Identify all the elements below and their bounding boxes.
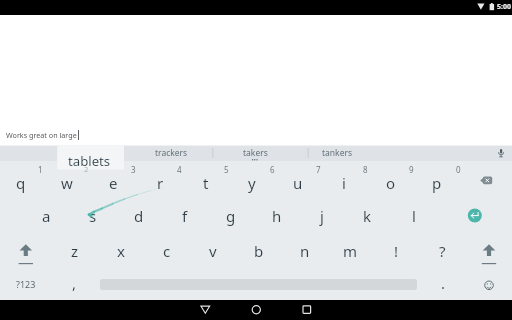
- staticText: y: [248, 173, 256, 193]
- button[interactable]: q: [0, 170, 44, 196]
- button[interactable]: c: [144, 238, 189, 264]
- staticText: u: [293, 173, 303, 193]
- staticText: 4: [177, 164, 182, 175]
- staticText: a: [42, 206, 51, 226]
- staticText: q: [16, 173, 26, 193]
- button[interactable]: tablets: [54, 148, 124, 174]
- staticText: 1: [38, 164, 43, 175]
- staticText: l: [412, 206, 416, 226]
- button[interactable]: [239, 300, 273, 320]
- button[interactable]: i: [321, 170, 367, 196]
- button[interactable]: v: [190, 238, 235, 264]
- button[interactable]: takers: [220, 140, 290, 166]
- button[interactable]: [188, 300, 222, 320]
- staticText: .: [441, 273, 446, 293]
- staticText: v: [209, 241, 217, 261]
- staticText: ,: [72, 273, 77, 293]
- staticText: 9: [409, 164, 414, 175]
- staticText: s: [89, 206, 97, 226]
- button[interactable]: l: [391, 203, 436, 229]
- button[interactable]: h: [254, 203, 299, 229]
- staticText: w: [61, 173, 73, 193]
- staticText: 5:00: [497, 2, 511, 12]
- staticText: r: [157, 173, 164, 193]
- button[interactable]: .: [428, 270, 458, 296]
- button[interactable]: e: [90, 170, 136, 196]
- button[interactable]: w: [44, 170, 90, 196]
- button[interactable]: a: [24, 203, 69, 229]
- staticText: 8: [363, 164, 368, 175]
- staticText: b: [254, 241, 264, 261]
- staticText: tablets: [68, 152, 111, 170]
- staticText: 5: [224, 164, 229, 175]
- button[interactable]: [488, 144, 512, 161]
- button[interactable]: k: [345, 203, 390, 229]
- staticText: 7: [316, 164, 321, 175]
- button[interactable]: [471, 271, 507, 298]
- button[interactable]: n: [282, 238, 327, 264]
- staticText: j: [320, 206, 324, 226]
- staticText: 2: [84, 164, 89, 174]
- staticText: g: [226, 206, 236, 226]
- button[interactable]: ?: [420, 238, 465, 264]
- button[interactable]: d: [116, 203, 161, 229]
- staticText: ?123: [16, 278, 36, 290]
- button[interactable]: o: [368, 170, 414, 196]
- button[interactable]: s: [70, 203, 115, 229]
- staticText: ?: [439, 241, 446, 261]
- button[interactable]: tankers: [302, 140, 372, 166]
- button[interactable]: r: [137, 170, 183, 196]
- staticText: k: [363, 206, 372, 226]
- button[interactable]: [469, 234, 509, 262]
- button[interactable]: t: [183, 170, 229, 196]
- button[interactable]: u: [275, 170, 321, 196]
- button[interactable]: ,: [59, 270, 89, 296]
- staticText: x: [117, 241, 125, 261]
- staticText: trackers: [155, 147, 188, 159]
- button[interactable]: z: [52, 238, 97, 264]
- button[interactable]: [458, 199, 492, 232]
- staticText: f: [182, 206, 188, 226]
- staticText: t: [203, 173, 209, 193]
- staticText: takers: [243, 147, 268, 159]
- button[interactable]: g: [208, 203, 253, 229]
- staticText: 6: [270, 164, 275, 175]
- staticText: 3: [131, 164, 136, 175]
- staticText: i: [342, 173, 346, 193]
- button[interactable]: j: [299, 203, 344, 229]
- staticText: 0: [456, 164, 461, 175]
- staticText: p: [432, 173, 442, 193]
- staticText: c: [163, 241, 171, 261]
- button[interactable]: x: [98, 238, 143, 264]
- staticText: e: [109, 173, 118, 193]
- button[interactable]: !: [374, 238, 419, 264]
- button[interactable]: [470, 166, 504, 194]
- staticText: h: [272, 206, 282, 226]
- staticText: n: [300, 241, 310, 261]
- button[interactable]: m: [328, 238, 373, 264]
- staticText: o: [386, 173, 396, 193]
- staticText: m: [343, 241, 358, 261]
- staticText: d: [134, 206, 144, 226]
- button[interactable]: ?123: [6, 271, 46, 297]
- staticText: !: [394, 241, 399, 261]
- button[interactable]: b: [236, 238, 281, 264]
- staticText: Works great on large: [6, 130, 77, 140]
- button[interactable]: [290, 300, 324, 320]
- button[interactable]: trackers: [136, 140, 206, 166]
- button[interactable]: f: [162, 203, 207, 229]
- button[interactable]: p: [414, 170, 460, 196]
- button[interactable]: y: [229, 170, 275, 196]
- staticText: tankers: [322, 147, 353, 159]
- button[interactable]: [6, 234, 46, 262]
- staticText: z: [71, 241, 79, 261]
